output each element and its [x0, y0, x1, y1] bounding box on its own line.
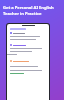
staticText: Get a Personal AI English Teacher in Pra…: [3, 5, 62, 16]
